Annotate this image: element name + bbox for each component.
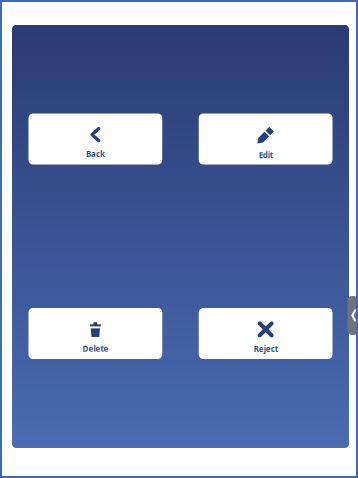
button[interactable]: Open panel: [348, 296, 358, 335]
staticText: Edit: [259, 150, 273, 160]
staticText: Reject: [254, 344, 278, 354]
button[interactable]: Delete: [28, 308, 162, 359]
staticText: Delete: [82, 343, 108, 354]
button[interactable]: Edit: [199, 113, 333, 164]
button[interactable]: Back: [28, 113, 162, 164]
staticText: Back: [86, 149, 105, 159]
button[interactable]: Reject: [199, 308, 333, 359]
